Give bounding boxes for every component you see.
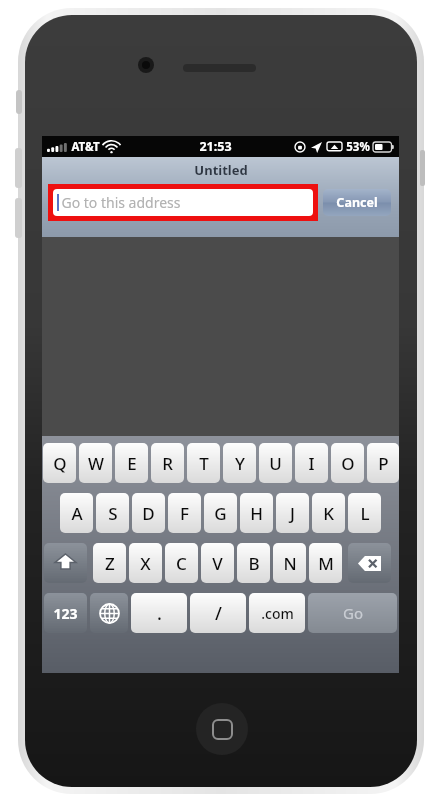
button[interactable]: E (115, 443, 148, 483)
button[interactable]: Home (196, 703, 248, 755)
button[interactable]: P (367, 443, 399, 483)
staticText: A (71, 502, 83, 525)
staticText: J (290, 502, 295, 525)
button[interactable]: Numbers (44, 593, 87, 633)
staticText: Z (105, 552, 115, 575)
staticText: L (360, 502, 370, 525)
staticText: Cancel (336, 194, 378, 211)
staticText: Untitled (194, 161, 248, 179)
button[interactable]: X (129, 543, 162, 583)
button[interactable]: K (312, 493, 345, 533)
button[interactable]: Z (93, 543, 126, 583)
staticText: P (378, 452, 389, 475)
staticText: R (162, 452, 173, 475)
button[interactable]: H (240, 493, 273, 533)
staticText: .com (261, 604, 294, 623)
staticText: N (283, 552, 297, 575)
button[interactable]: D (132, 493, 165, 533)
button[interactable]: G (204, 493, 237, 533)
button[interactable]: O (331, 443, 364, 483)
button[interactable]: C (165, 543, 198, 583)
staticText: G (214, 502, 227, 525)
staticText: D (142, 502, 155, 525)
staticText: K (323, 502, 334, 525)
staticText: V (212, 552, 223, 575)
button[interactable]: M (309, 543, 342, 583)
button[interactable]: F (168, 493, 201, 533)
staticText: X (140, 552, 151, 575)
button[interactable]: B (237, 543, 270, 583)
button[interactable]: / (190, 593, 246, 633)
staticText: U (269, 452, 282, 475)
button[interactable]: J (276, 493, 309, 533)
staticText: Q (53, 452, 67, 475)
staticText: B (248, 552, 260, 575)
button[interactable]: W (79, 443, 112, 483)
staticText: I (308, 452, 315, 475)
staticText: T (199, 452, 209, 475)
button[interactable]: I (295, 443, 328, 483)
button[interactable]: Y (223, 443, 256, 483)
staticText: Go (343, 603, 363, 623)
button[interactable]: L (348, 493, 381, 533)
button[interactable]: N (273, 543, 306, 583)
staticText: / (215, 601, 222, 626)
button[interactable]: Go to this address (53, 189, 313, 216)
staticText: F (180, 502, 189, 525)
button[interactable]: . (131, 593, 187, 633)
button[interactable]: Backspace (348, 543, 391, 583)
staticText: E (127, 452, 137, 475)
staticText: . (157, 601, 162, 626)
staticText: O (341, 452, 355, 475)
staticText: 53% (346, 139, 370, 155)
staticText: 21:53 (199, 138, 232, 155)
staticText: M (318, 552, 334, 575)
button[interactable]: U (259, 443, 292, 483)
button[interactable]: Cancel (323, 189, 391, 216)
button[interactable]: A (60, 493, 93, 533)
button[interactable]: T (187, 443, 220, 483)
button[interactable]: R (151, 443, 184, 483)
button[interactable]: .com (249, 593, 305, 633)
staticText: 123 (53, 604, 78, 623)
button[interactable]: S (96, 493, 129, 533)
staticText: Y (235, 452, 245, 475)
staticText: H (250, 502, 263, 525)
button[interactable]: Change keyboard (90, 593, 128, 633)
staticText: W (88, 452, 104, 475)
button[interactable]: Go (308, 593, 397, 633)
button[interactable]: V (201, 543, 234, 583)
button[interactable]: Shift (44, 543, 87, 583)
staticText: Go to this address (61, 193, 181, 212)
staticText: AT&T (71, 139, 100, 155)
button[interactable]: Q (43, 443, 76, 483)
staticText: S (108, 502, 118, 525)
staticText: C (176, 552, 187, 575)
